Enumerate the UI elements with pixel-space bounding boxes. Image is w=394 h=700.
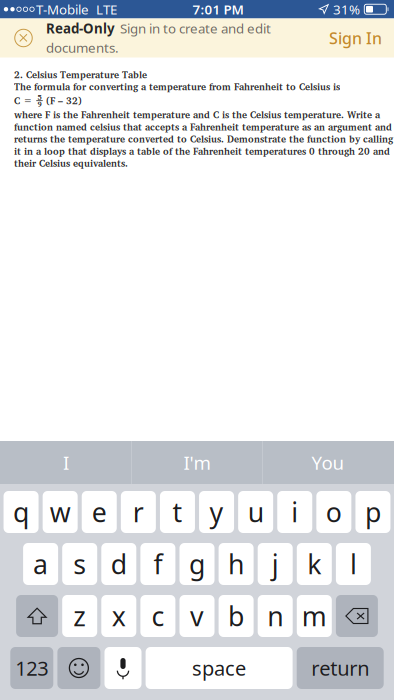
staticText: c <box>151 598 164 634</box>
button[interactable]: You <box>263 441 393 484</box>
button[interactable]: p <box>355 491 390 533</box>
button[interactable]: 123 <box>10 647 53 689</box>
staticText: t <box>172 494 182 530</box>
staticText: T-Mobile <box>36 0 89 18</box>
staticText: Read-Only <box>46 19 115 37</box>
button[interactable]: a <box>23 543 58 585</box>
button[interactable]: u <box>238 491 273 533</box>
button[interactable]: b <box>219 595 254 637</box>
button[interactable]: t <box>160 491 195 533</box>
button[interactable]: v <box>179 595 214 637</box>
button[interactable]: o <box>316 491 351 533</box>
staticText: 2. Celsius Temperature Table <box>14 68 147 81</box>
staticText: 7:01 PM <box>192 0 243 18</box>
button[interactable]: n <box>258 595 293 637</box>
button[interactable]: d <box>101 543 136 585</box>
staticText: v <box>190 598 204 634</box>
staticText: o <box>326 494 342 530</box>
staticText: p <box>365 494 381 530</box>
staticText: return <box>311 655 369 681</box>
staticText: The formula for converting a temperature… <box>14 81 340 93</box>
staticText: x <box>112 598 126 634</box>
staticText: r <box>133 494 144 530</box>
button[interactable]: I <box>1 441 131 484</box>
staticText: 5 <box>37 91 41 103</box>
staticText: 31% <box>333 0 360 18</box>
button[interactable]: I'm <box>132 441 262 484</box>
staticText: C = <box>14 95 33 107</box>
staticText: d <box>111 546 127 582</box>
button[interactable]: r <box>121 491 156 533</box>
staticText: where F is the Fahrenheit temperature an… <box>14 109 393 169</box>
button[interactable]: y <box>199 491 234 533</box>
button[interactable]: l <box>336 543 371 585</box>
staticText: e <box>92 494 107 530</box>
button[interactable]: return <box>297 647 384 689</box>
button[interactable]: Emoji <box>57 647 100 689</box>
staticText: l <box>350 546 357 582</box>
button[interactable]: c <box>140 595 175 637</box>
staticText: w <box>50 494 71 530</box>
staticText: u <box>248 494 264 530</box>
button[interactable]: Dictate <box>104 647 141 689</box>
staticText: space <box>192 655 246 681</box>
staticText: j <box>272 546 279 582</box>
staticText: You <box>311 450 344 475</box>
button[interactable]: w <box>43 491 78 533</box>
staticText: a <box>33 546 48 582</box>
staticText: f <box>153 546 162 582</box>
button[interactable]: Shift <box>16 595 58 637</box>
staticText: 123 <box>15 655 48 681</box>
staticText: q <box>13 494 29 530</box>
button[interactable]: x <box>101 595 136 637</box>
staticText: h <box>228 546 244 582</box>
button[interactable]: g <box>179 543 214 585</box>
button[interactable]: s <box>62 543 97 585</box>
button[interactable]: k <box>297 543 332 585</box>
staticText: b <box>228 598 244 634</box>
button[interactable]: f <box>140 543 175 585</box>
staticText: k <box>307 546 321 582</box>
staticText: g <box>189 546 205 582</box>
button[interactable]: j <box>258 543 293 585</box>
button[interactable]: e <box>82 491 117 533</box>
staticText: 9 <box>37 98 41 110</box>
staticText: n <box>267 598 283 634</box>
staticText: documents. <box>46 39 119 56</box>
button[interactable]: space <box>146 647 293 689</box>
button[interactable]: m <box>297 595 332 637</box>
button[interactable]: z <box>62 595 97 637</box>
button[interactable]: Delete <box>336 595 378 637</box>
button[interactable]: i <box>277 491 312 533</box>
staticText: i <box>291 494 298 530</box>
staticText: I <box>63 450 69 475</box>
button[interactable]: h <box>219 543 254 585</box>
staticText: I'm <box>183 450 210 475</box>
staticText: m <box>302 598 327 634</box>
button[interactable]: Sign In <box>326 18 385 57</box>
staticText: y <box>210 494 224 530</box>
staticText: Sign In <box>329 27 382 49</box>
staticText: Sign in to create and edit <box>120 19 271 37</box>
staticText: (F – 32) <box>46 95 82 107</box>
staticText: LTE <box>96 0 117 18</box>
button[interactable]: q <box>4 491 39 533</box>
staticText: z <box>73 598 86 634</box>
button[interactable]: Dismiss <box>14 18 39 57</box>
staticText: s <box>73 546 86 582</box>
